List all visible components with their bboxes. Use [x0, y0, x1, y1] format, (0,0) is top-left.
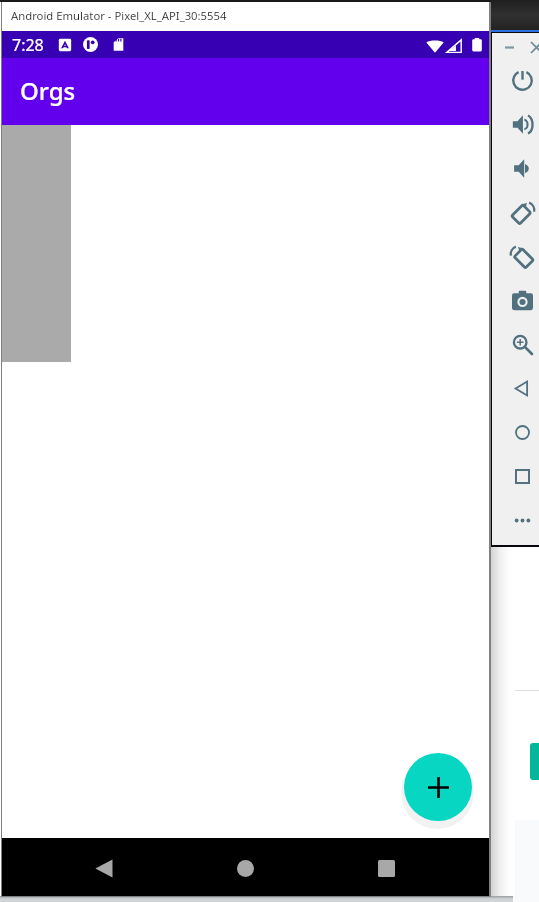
button[interactable]: Overview: [509, 463, 535, 489]
button[interactable]: Volume down: [509, 155, 535, 181]
button[interactable]: Add organisation: [404, 753, 472, 821]
button[interactable]: Close: [527, 38, 539, 56]
button[interactable]: Power: [509, 67, 535, 93]
button[interactable]: Zoom: [509, 331, 535, 357]
button[interactable]: Back: [87, 851, 121, 885]
button[interactable]: More: [509, 507, 535, 533]
button[interactable]: Home: [509, 419, 535, 445]
button[interactable]: Home: [228, 851, 262, 885]
button[interactable]: Rotate left: [509, 199, 535, 225]
staticText: Orgs: [20, 74, 76, 107]
button[interactable]: Recent apps: [369, 851, 403, 885]
button[interactable]: Minimize: [500, 38, 518, 56]
button[interactable]: Take screenshot: [509, 287, 535, 313]
button[interactable]: Volume up: [509, 111, 535, 137]
button[interactable]: Orgs: [2, 58, 489, 125]
button[interactable]: Rotate right: [509, 243, 535, 269]
button[interactable]: Back: [509, 375, 535, 401]
staticText: Android Emulator - Pixel_XL_API_30:5554: [11, 8, 227, 23]
staticText: 7:28: [12, 34, 44, 56]
